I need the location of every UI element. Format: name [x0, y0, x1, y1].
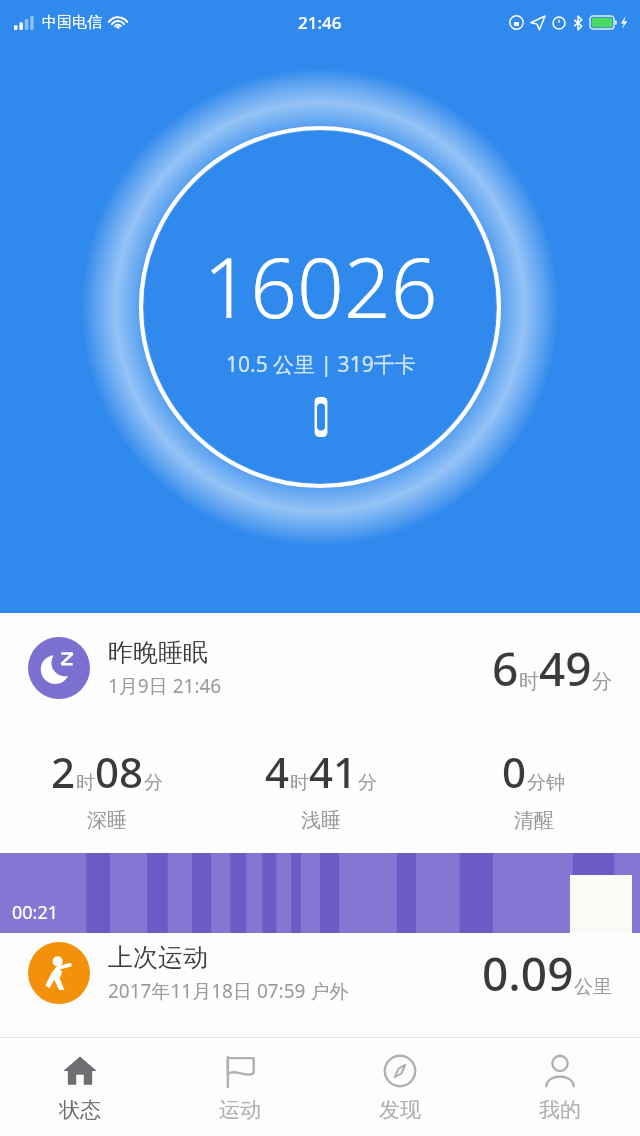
button[interactable]: 2 — [0, 743, 214, 833]
staticText: 2 — [51, 743, 76, 800]
staticText: 08 — [95, 743, 144, 800]
staticText: 10.5 公里 | 319千卡 — [226, 350, 416, 379]
staticText: 时 — [519, 669, 539, 694]
staticText: 1月9日 21:46 — [108, 673, 222, 699]
staticText: 2017年11月18日 07:59 户外 — [108, 978, 349, 1004]
staticText: 分钟 — [527, 771, 565, 795]
staticText: 00:21 — [12, 900, 59, 925]
staticText: 昨晚睡眠 — [108, 637, 208, 668]
staticText: 时 — [290, 771, 309, 795]
staticText: 21:46 — [298, 11, 342, 34]
button[interactable]: 上次运动 — [0, 933, 640, 1013]
button[interactable]: 0 — [427, 743, 640, 833]
button[interactable]: 发现 — [320, 1038, 480, 1136]
staticText: 状态 — [59, 1097, 101, 1123]
staticText: 时 — [76, 771, 95, 795]
staticText: 中国电信 — [42, 13, 102, 32]
button[interactable]: 状态 — [0, 1038, 160, 1136]
button[interactable]: 我的 — [480, 1038, 640, 1136]
staticText: 49 — [539, 637, 592, 700]
staticText: 浅睡 — [301, 808, 341, 833]
staticText: 我的 — [539, 1097, 581, 1123]
staticText: 分 — [144, 771, 163, 795]
button[interactable]: 00:21 — [0, 853, 640, 933]
staticText: 公里 — [574, 975, 612, 999]
staticText: 0.09 — [482, 942, 574, 1005]
staticText: 6 — [492, 637, 519, 700]
button[interactable]: 4 — [214, 743, 427, 833]
staticText: 16026 — [203, 230, 438, 342]
button[interactable]: 运动 — [160, 1038, 320, 1136]
staticText: 发现 — [379, 1097, 421, 1123]
staticText: 深睡 — [87, 808, 127, 833]
staticText: 分 — [358, 771, 377, 795]
staticText: 4 — [265, 743, 290, 800]
button[interactable]: 昨晚睡眠 — [0, 613, 640, 723]
staticText: 分 — [592, 669, 612, 694]
staticText: 41 — [309, 743, 358, 800]
staticText: 运动 — [219, 1097, 261, 1123]
staticText: 上次运动 — [108, 942, 208, 973]
staticText: 0 — [502, 743, 527, 800]
staticText: 清醒 — [514, 808, 554, 833]
